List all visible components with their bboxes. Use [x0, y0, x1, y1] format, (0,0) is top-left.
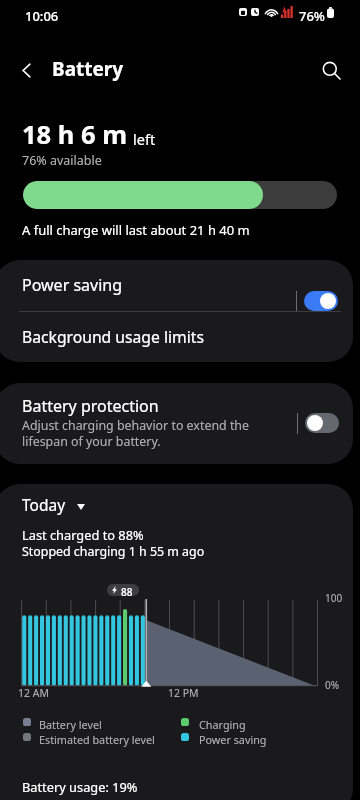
- staticText: Battery: [52, 56, 124, 82]
- button[interactable]: Search: [313, 52, 349, 88]
- button[interactable]: Turn on: [305, 413, 339, 433]
- staticText: 76%: [299, 7, 325, 25]
- staticText: Battery level: [39, 717, 102, 732]
- staticText: 0%: [325, 678, 340, 692]
- staticText: Charging: [199, 717, 246, 732]
- button[interactable]: Today: [17, 492, 90, 521]
- staticText: 12 PM: [168, 686, 199, 700]
- staticText: 100: [325, 591, 343, 605]
- staticText: Stopped charging 1 h 55 m ago: [22, 543, 205, 560]
- staticText: lifespan of your battery.: [22, 433, 161, 450]
- staticText: 76% available: [22, 152, 102, 169]
- staticText: Battery protection: [22, 395, 159, 417]
- staticText: 10:06: [25, 7, 59, 25]
- staticText: Background usage limits: [22, 326, 204, 347]
- button[interactable]: Power saving: [0, 260, 353, 311]
- staticText: Last charged to 88%: [22, 526, 144, 543]
- staticText: Power saving: [22, 274, 123, 296]
- staticText: 18 h 6 m: [22, 117, 128, 152]
- staticText: Power saving: [199, 732, 267, 747]
- staticText: Battery usage: 19%: [22, 778, 138, 795]
- staticText: Estimated battery level: [39, 732, 155, 747]
- staticText: 88: [121, 585, 133, 596]
- staticText: Adjust charging behavior to extend the: [22, 417, 249, 434]
- button[interactable]: Turn off: [304, 291, 338, 311]
- staticText: left: [133, 129, 156, 149]
- button[interactable]: Battery protection: [0, 383, 353, 464]
- staticText: Today: [22, 494, 66, 515]
- staticText: A full charge will last about 21 h 40 m: [22, 221, 250, 239]
- staticText: 12 AM: [18, 686, 49, 700]
- button[interactable]: Navigate up: [8, 52, 44, 88]
- button[interactable]: Background usage limits: [0, 312, 353, 362]
